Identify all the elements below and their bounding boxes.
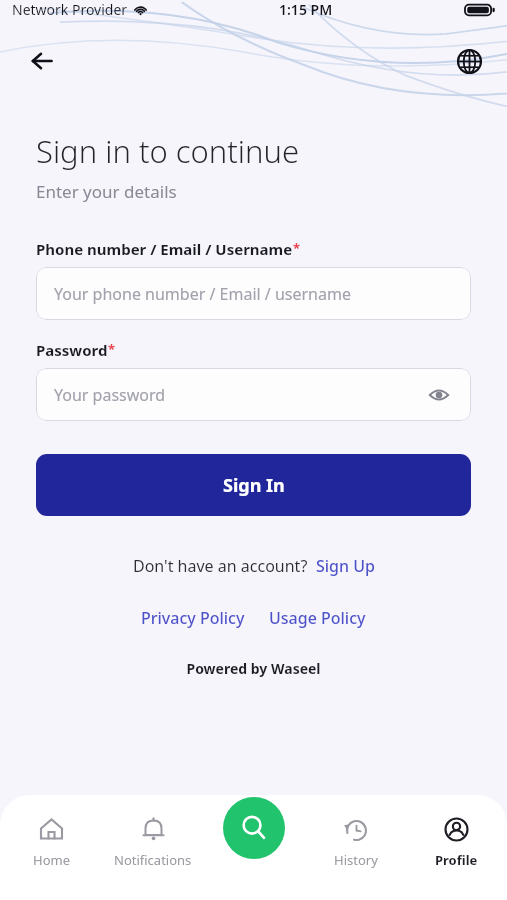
- staticText: Usage Policy: [269, 607, 366, 629]
- staticText: *: [293, 239, 301, 257]
- button[interactable]: Back: [22, 41, 62, 81]
- button[interactable]: Usage Policy: [269, 607, 366, 629]
- staticText: *: [108, 340, 116, 358]
- staticText: Sign Up: [316, 555, 375, 577]
- staticText: 1:15 PM: [279, 0, 333, 19]
- button[interactable]: Home: [0, 813, 102, 873]
- button[interactable]: Search: [223, 797, 285, 859]
- staticText: Your password: [54, 384, 166, 406]
- button[interactable]: Privacy Policy: [141, 607, 245, 629]
- staticText: Sign in to continue: [36, 130, 300, 172]
- staticText: Sign In: [223, 473, 285, 498]
- staticText: Powered by Waseel: [0, 659, 507, 678]
- staticText: Enter your details: [36, 180, 177, 203]
- staticText: History: [334, 851, 378, 869]
- staticText: Your phone number / Email / username: [54, 283, 351, 305]
- staticText: Don't have an account?: [133, 555, 308, 577]
- button[interactable]: Notifications: [102, 813, 204, 873]
- staticText: Phone number / Email / Username: [36, 239, 293, 259]
- button[interactable]: Profile: [406, 813, 507, 873]
- staticText: Home: [33, 851, 70, 869]
- button[interactable]: Show password: [425, 381, 453, 409]
- staticText: Notifications: [114, 851, 192, 869]
- button[interactable]: Sign Up: [316, 555, 375, 577]
- button[interactable]: History: [305, 813, 406, 873]
- button[interactable]: Sign In: [36, 454, 471, 516]
- staticText: Privacy Policy: [141, 607, 245, 629]
- button[interactable]: Change language: [449, 41, 489, 81]
- button[interactable]: Your phone number / Email / username: [36, 267, 471, 320]
- button[interactable]: Your password: [36, 368, 471, 421]
- staticText: Profile: [435, 851, 478, 869]
- staticText: Network Provider: [12, 0, 128, 19]
- staticText: Password: [36, 340, 108, 360]
